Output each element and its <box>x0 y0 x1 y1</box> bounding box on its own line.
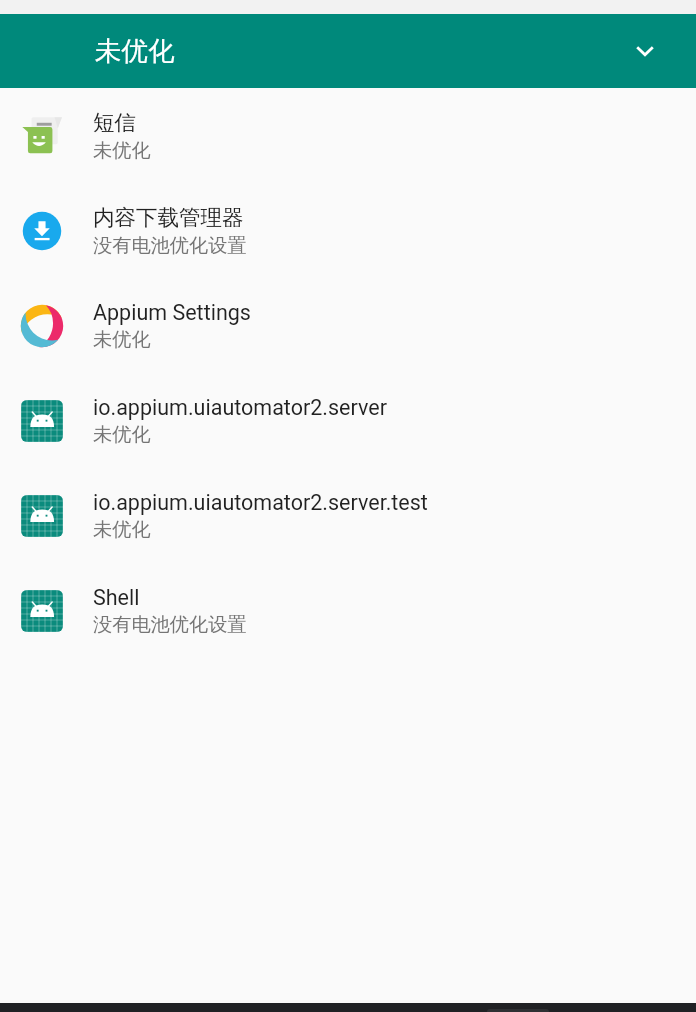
staticText: 未优化 <box>93 423 151 447</box>
button[interactable]: Appium Settings <box>0 278 696 373</box>
button[interactable]: io.appium.uiautomator2.server.test <box>0 468 696 563</box>
button[interactable]: Show battery optimisation filter <box>617 23 673 79</box>
button[interactable]: Shell <box>0 563 696 658</box>
staticText: 短信 <box>93 109 136 136</box>
staticText: 未优化 <box>93 518 151 542</box>
staticText: 没有电池优化设置 <box>93 234 247 258</box>
button[interactable]: 短信 <box>0 88 696 183</box>
staticText: io.appium.uiautomator2.server <box>93 395 387 420</box>
staticText: io.appium.uiautomator2.server.test <box>93 490 428 515</box>
button[interactable]: 内容下载管理器 <box>0 183 696 278</box>
staticText: 未优化 <box>93 328 151 352</box>
staticText: 没有电池优化设置 <box>93 613 247 637</box>
staticText: Appium Settings <box>93 300 251 325</box>
staticText: 未优化 <box>93 139 151 163</box>
staticText: 内容下载管理器 <box>93 204 244 231</box>
staticText: 未优化 <box>95 34 175 67</box>
button[interactable]: 未优化 <box>0 14 696 88</box>
button[interactable]: io.appium.uiautomator2.server <box>0 373 696 468</box>
staticText: Shell <box>93 585 140 610</box>
